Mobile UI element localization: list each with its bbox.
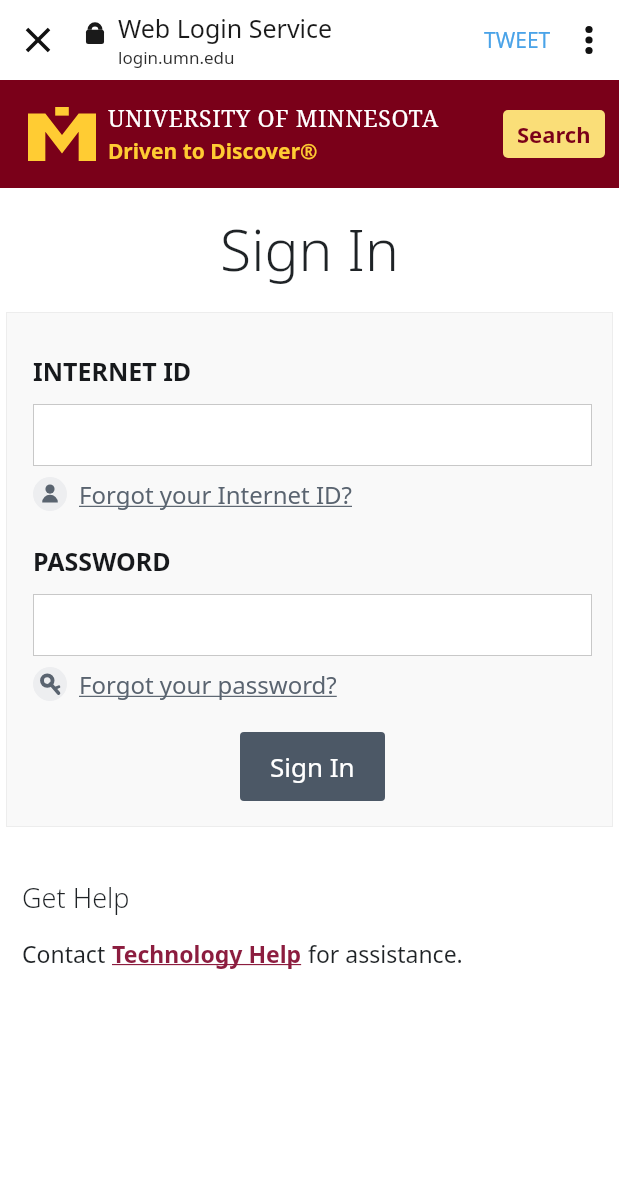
staticText: Sign In [0, 210, 619, 288]
button[interactable]: More options [565, 16, 613, 64]
staticText: Forgot your Internet ID? [79, 478, 352, 511]
button[interactable]: Forgot your Internet ID? [33, 474, 352, 514]
staticText: Driven to Discover® [108, 137, 318, 166]
staticText: Technology Help [112, 938, 302, 969]
staticText: INTERNET ID [33, 354, 192, 388]
button[interactable]: Close [14, 16, 62, 64]
staticText: Search [517, 119, 591, 149]
staticText: Contact [22, 938, 112, 969]
staticText: UNIVERSITY OF MINNESOTA [108, 102, 439, 133]
button[interactable]: Forgot your password? [33, 664, 337, 704]
button[interactable] [33, 594, 592, 656]
staticText: PASSWORD [33, 544, 171, 578]
button[interactable] [33, 404, 592, 466]
staticText: login.umn.edu [118, 46, 235, 69]
button[interactable]: Technology Help [112, 938, 302, 969]
staticText: Web Login Service [118, 11, 333, 45]
button[interactable]: Sign In [240, 732, 385, 801]
staticText: Get Help [22, 879, 130, 916]
staticText: TWEET [484, 26, 551, 55]
staticText: Sign In [270, 749, 355, 784]
staticText: Forgot your password? [79, 668, 337, 701]
button[interactable]: Search [503, 110, 605, 158]
button[interactable]: TWEET [478, 18, 557, 63]
staticText: for assistance. [302, 938, 463, 969]
